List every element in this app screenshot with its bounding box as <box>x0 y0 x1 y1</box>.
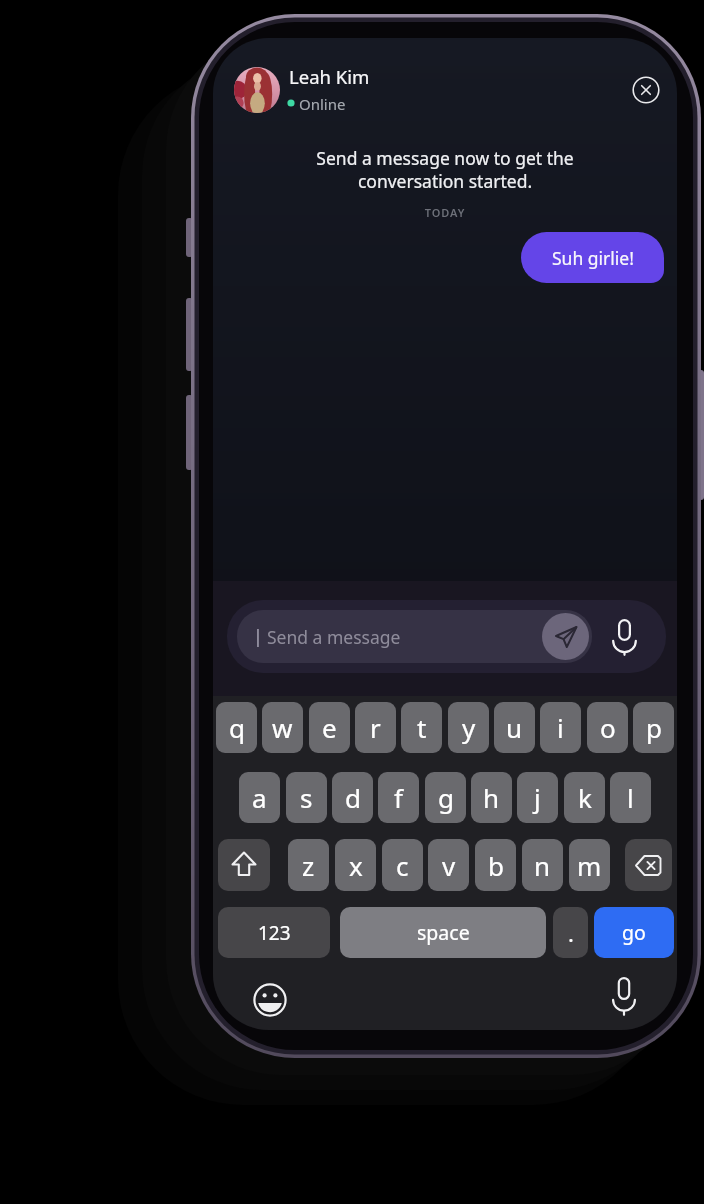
button[interactable]: j <box>517 772 558 823</box>
button[interactable]: f <box>378 772 419 823</box>
staticText: 123 <box>258 920 291 946</box>
staticText: p <box>646 710 662 745</box>
staticText: Send a message <box>267 625 401 649</box>
button[interactable] <box>218 839 270 891</box>
staticText: c <box>396 848 409 883</box>
button[interactable]: k <box>564 772 605 823</box>
staticText: f <box>394 780 403 815</box>
button[interactable]: Suh girlie! <box>521 232 664 283</box>
button[interactable]: s <box>286 772 327 823</box>
staticText: q <box>229 710 245 745</box>
button[interactable]: c <box>382 839 423 891</box>
staticText: Online <box>299 94 346 114</box>
button[interactable]: y <box>448 702 489 753</box>
button[interactable]: g <box>425 772 466 823</box>
staticText: z <box>302 848 315 883</box>
staticText: v <box>442 848 456 883</box>
button[interactable]: o <box>587 702 628 753</box>
button[interactable] <box>253 983 287 1017</box>
staticText: Suh girlie! <box>552 246 634 270</box>
button[interactable]: space <box>340 907 546 958</box>
staticText: b <box>488 848 504 883</box>
button[interactable]: p <box>633 702 674 753</box>
staticText: go <box>622 919 646 946</box>
staticText: g <box>438 780 454 815</box>
staticText: d <box>345 780 361 815</box>
button[interactable]: d <box>332 772 373 823</box>
staticText: m <box>577 848 602 883</box>
staticText: o <box>600 710 616 745</box>
button[interactable]: a <box>239 772 280 823</box>
button[interactable]: e <box>309 702 350 753</box>
button[interactable]: t <box>401 702 442 753</box>
staticText: t <box>417 710 427 745</box>
button[interactable]: z <box>288 839 329 891</box>
button[interactable] <box>609 976 639 1018</box>
button[interactable] <box>607 617 641 659</box>
staticText: n <box>534 848 551 883</box>
button[interactable]: w <box>262 702 303 753</box>
staticText: TODAY <box>213 205 677 220</box>
staticText: l <box>627 780 634 815</box>
staticText: | <box>253 624 263 649</box>
staticText: u <box>506 710 523 745</box>
button[interactable]: l <box>610 772 651 823</box>
staticText: h <box>483 780 500 815</box>
button[interactable]: i <box>540 702 581 753</box>
staticText: i <box>557 710 564 745</box>
staticText: k <box>578 780 592 815</box>
staticText: a <box>252 780 267 815</box>
button[interactable]: x <box>335 839 376 891</box>
button[interactable]: 123 <box>218 907 330 958</box>
button[interactable]: b <box>475 839 516 891</box>
button[interactable] <box>631 75 661 105</box>
staticText: space <box>417 919 470 946</box>
staticText: x <box>349 848 363 883</box>
staticText: j <box>534 780 541 815</box>
button[interactable]: n <box>522 839 563 891</box>
button[interactable]: go <box>594 907 674 958</box>
button[interactable]: h <box>471 772 512 823</box>
button[interactable] <box>625 839 672 891</box>
staticText: Send a message now to get the conversati… <box>213 146 677 194</box>
staticText: e <box>322 710 337 745</box>
staticText: Leah Kim <box>289 64 370 89</box>
button[interactable]: . <box>553 907 588 958</box>
staticText: w <box>272 710 293 745</box>
staticText: r <box>370 710 381 745</box>
button[interactable]: v <box>428 839 469 891</box>
staticText: . <box>568 918 574 948</box>
button[interactable]: | <box>237 610 592 663</box>
button[interactable]: q <box>216 702 257 753</box>
button[interactable]: u <box>494 702 535 753</box>
staticText: s <box>300 780 313 815</box>
staticText: y <box>462 710 476 745</box>
button[interactable]: r <box>355 702 396 753</box>
button[interactable] <box>234 67 280 113</box>
button[interactable]: m <box>569 839 610 891</box>
button[interactable] <box>542 613 589 660</box>
